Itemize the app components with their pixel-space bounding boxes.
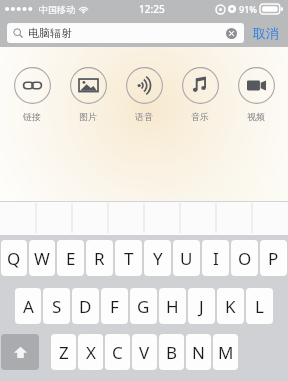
staticText: N (192, 341, 205, 364)
button[interactable]: 音乐 (172, 65, 228, 124)
button[interactable]: K (217, 288, 244, 324)
button[interactable]: 语音 (116, 65, 172, 124)
button[interactable]: S (43, 288, 70, 324)
button[interactable]: H (159, 288, 186, 324)
button[interactable]: 图片 (60, 65, 116, 124)
staticText: G (137, 295, 150, 318)
staticText: 91% (239, 3, 257, 15)
button[interactable]: L (246, 288, 273, 324)
staticText: F (110, 295, 119, 318)
staticText: 链接 (23, 111, 41, 122)
staticText: E (66, 247, 76, 270)
staticText: 电脑辐射 (28, 26, 72, 40)
staticText: T (124, 247, 134, 270)
button[interactable]: C (105, 334, 130, 370)
staticText: O (238, 247, 252, 270)
staticText: K (225, 295, 236, 318)
button[interactable]: U (173, 240, 200, 276)
button[interactable]: 视频 (228, 65, 284, 124)
button[interactable]: E (57, 240, 84, 276)
staticText: H (166, 295, 179, 318)
button[interactable]: N (186, 334, 211, 370)
staticText: P (268, 247, 279, 270)
staticText: 取消 (253, 25, 279, 41)
staticText: D (79, 295, 92, 318)
staticText: I (213, 247, 219, 270)
button[interactable]: M (213, 334, 238, 370)
staticText: Z (59, 341, 69, 364)
button[interactable]: R (86, 240, 113, 276)
button[interactable]: Shift (1, 334, 39, 370)
button[interactable]: Clear (225, 27, 238, 40)
button[interactable]: Y (144, 240, 171, 276)
button[interactable]: W (29, 240, 55, 276)
button[interactable]: V (132, 334, 157, 370)
button[interactable]: Z (51, 334, 76, 370)
button[interactable]: J (188, 288, 215, 324)
staticText: W (34, 247, 50, 270)
button[interactable]: 链接 (4, 65, 60, 124)
staticText: R (94, 247, 105, 270)
staticText: S (52, 295, 62, 318)
staticText: B (166, 341, 178, 364)
staticText: Q (7, 247, 21, 270)
button[interactable]: D (72, 288, 99, 324)
button[interactable]: F (101, 288, 128, 324)
button[interactable]: A (15, 288, 41, 324)
button[interactable]: Q (1, 240, 27, 276)
staticText: 图片 (79, 111, 97, 122)
button[interactable]: O (231, 240, 258, 276)
button[interactable]: X (78, 334, 103, 370)
staticText: 音乐 (191, 111, 209, 122)
staticText: C (112, 341, 123, 364)
staticText: M (218, 341, 234, 364)
staticText: 12:25 (139, 2, 165, 16)
button[interactable]: 电脑辐射 (7, 23, 244, 43)
staticText: 中国移动 (39, 4, 75, 15)
staticText: J (199, 295, 204, 318)
staticText: X (86, 341, 96, 364)
button[interactable]: I (202, 240, 229, 276)
button[interactable]: G (130, 288, 157, 324)
button[interactable]: 取消 (251, 22, 281, 44)
staticText: U (180, 247, 193, 270)
staticText: 视频 (247, 111, 265, 122)
button[interactable]: T (115, 240, 142, 276)
staticText: A (23, 295, 34, 318)
button[interactable]: P (260, 240, 287, 276)
staticText: 语音 (135, 111, 153, 122)
staticText: L (255, 295, 264, 318)
button[interactable]: B (159, 334, 184, 370)
staticText: Y (153, 247, 163, 270)
staticText: V (139, 341, 150, 364)
